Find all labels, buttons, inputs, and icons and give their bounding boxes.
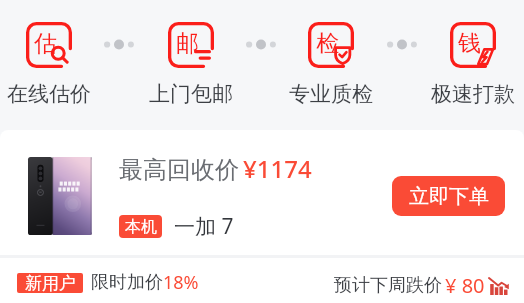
staticText: 一加 7: [174, 212, 234, 241]
staticText: 在线估价: [7, 81, 91, 107]
staticText: 本机: [125, 217, 157, 237]
staticText: 钱: [458, 29, 481, 58]
staticText: 上门包邮: [149, 81, 233, 107]
button[interactable]: 立即下单: [392, 176, 505, 216]
button[interactable]: 检: [281, 0, 381, 107]
button[interactable]: 邮: [141, 0, 241, 107]
staticText: ¥1174: [243, 152, 312, 185]
staticText: 最高回收价: [119, 155, 239, 185]
staticText: 检: [316, 29, 339, 58]
staticText: 立即下单: [409, 184, 489, 209]
button[interactable]: 新用户: [17, 270, 199, 295]
staticText: 估: [34, 29, 57, 58]
button[interactable]: 预计下周跌价: [334, 272, 509, 299]
button[interactable]: [0, 130, 524, 254]
staticText: 限时加价: [91, 271, 163, 294]
staticText: 预计下周跌价: [334, 274, 442, 297]
staticText: 专业质检: [289, 81, 373, 107]
other: Price trend chart: [489, 277, 509, 295]
staticText: 邮: [176, 29, 199, 58]
button[interactable]: 估: [0, 0, 99, 107]
staticText: 极速打款: [431, 81, 515, 107]
staticText: ¥ 80: [445, 272, 485, 299]
button[interactable]: 钱: [423, 0, 523, 107]
staticText: 18%: [163, 270, 199, 295]
staticText: 新用户: [25, 273, 76, 293]
